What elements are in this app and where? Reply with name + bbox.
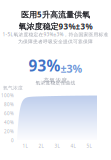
staticText: 0: [11, 137, 14, 144]
staticText: 100%: [1, 92, 14, 99]
staticText: 93%: [28, 55, 60, 76]
staticText: 40%: [4, 119, 14, 126]
staticText: 医用5升高流量供氧: [21, 9, 90, 20]
staticText: 80%: [4, 101, 14, 108]
staticText: 20%: [4, 128, 14, 135]
staticText: ±3%: [60, 61, 82, 76]
staticText: 氧气浓度: [3, 85, 23, 91]
staticText: 5L: [86, 143, 91, 149]
staticText: 2L: [38, 143, 43, 149]
staticText: 60%: [4, 110, 14, 117]
staticText: 高氧浓度: [43, 77, 67, 84]
staticText: 氧浓度稳定性曲线: [35, 80, 75, 86]
staticText: 1L: [22, 143, 27, 149]
staticText: 为保障患者呼吸安全提供可靠保障: [18, 39, 93, 45]
staticText: 4L: [70, 143, 75, 149]
staticText: 1-5L氧浓度稳定在93%±3%，符合国家医用标准: [2, 31, 108, 38]
staticText: 3L: [54, 143, 59, 149]
staticText: 氧浓度稳定93%±3%: [18, 21, 92, 32]
